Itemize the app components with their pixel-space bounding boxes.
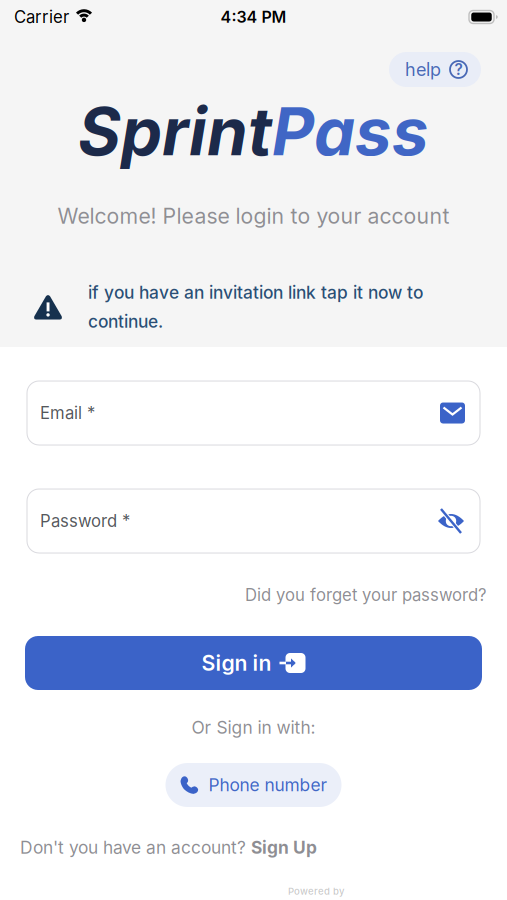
staticText: Welcome! Please login to your account: [57, 203, 449, 229]
button[interactable]: Phone number: [165, 763, 341, 807]
staticText: Email *: [40, 403, 95, 423]
staticText: help: [405, 59, 441, 80]
button[interactable]: Password *: [27, 489, 480, 553]
staticText: Powered by: [288, 885, 345, 897]
button[interactable]: Email *: [27, 381, 480, 445]
staticText: Did you forget your password?: [245, 585, 487, 605]
staticText: Sign in: [201, 650, 271, 676]
staticText: Pass: [272, 92, 429, 171]
staticText: Sign Up: [251, 837, 317, 858]
staticText: Carrier: [14, 7, 69, 27]
staticText: Phone number: [208, 774, 327, 795]
button[interactable]: help: [389, 52, 481, 87]
staticText: Password *: [40, 511, 130, 531]
staticText: Or Sign in with:: [191, 717, 315, 738]
button[interactable]: Sign in: [25, 636, 482, 690]
staticText: Sprint: [78, 92, 272, 171]
staticText: Don't you have an account?: [20, 837, 246, 858]
staticText: if you have an invitation link tap it no…: [88, 282, 423, 303]
button[interactable]: Sign Up: [251, 837, 317, 858]
staticText: 4:34 PM: [220, 7, 286, 27]
staticText: continue.: [88, 311, 163, 332]
staticText: ?: [454, 60, 462, 79]
button[interactable]: Did you forget your password?: [245, 585, 487, 605]
